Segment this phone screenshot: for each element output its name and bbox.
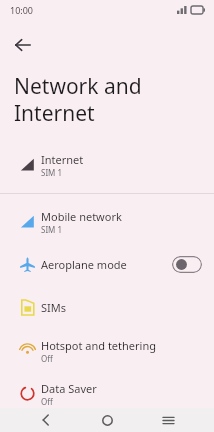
- staticText: SIM 1: [41, 224, 63, 235]
- button[interactable]: Aeroplane mode: [0, 243, 214, 286]
- button[interactable]: Internet: [0, 143, 214, 186]
- button[interactable]: Recent apps: [153, 408, 183, 432]
- button[interactable]: SIMs: [0, 286, 214, 329]
- staticText: Mobile network: [41, 209, 122, 224]
- staticText: Aeroplane mode: [41, 257, 127, 272]
- staticText: 10:00: [10, 4, 34, 16]
- button[interactable]: Mobile network: [0, 200, 214, 243]
- button[interactable]: Aeroplane mode toggle: [172, 256, 202, 273]
- staticText: Hotspot and tethering: [41, 338, 156, 353]
- staticText: Off: [41, 353, 53, 364]
- button[interactable]: Data Saver: [0, 372, 214, 415]
- button[interactable]: Back: [31, 408, 61, 432]
- staticText: Data Saver: [41, 381, 97, 396]
- staticText: SIM 1: [41, 167, 63, 178]
- button[interactable]: VPN: [0, 415, 214, 432]
- staticText: Network and Internet: [14, 72, 142, 127]
- button[interactable]: Home: [92, 408, 122, 432]
- button[interactable]: Back: [6, 28, 40, 62]
- staticText: SIMs: [41, 300, 67, 315]
- staticText: Internet: [41, 152, 84, 167]
- staticText: Off: [41, 396, 53, 407]
- staticText: VPN: [41, 416, 63, 431]
- button[interactable]: Hotspot and tethering: [0, 329, 214, 372]
